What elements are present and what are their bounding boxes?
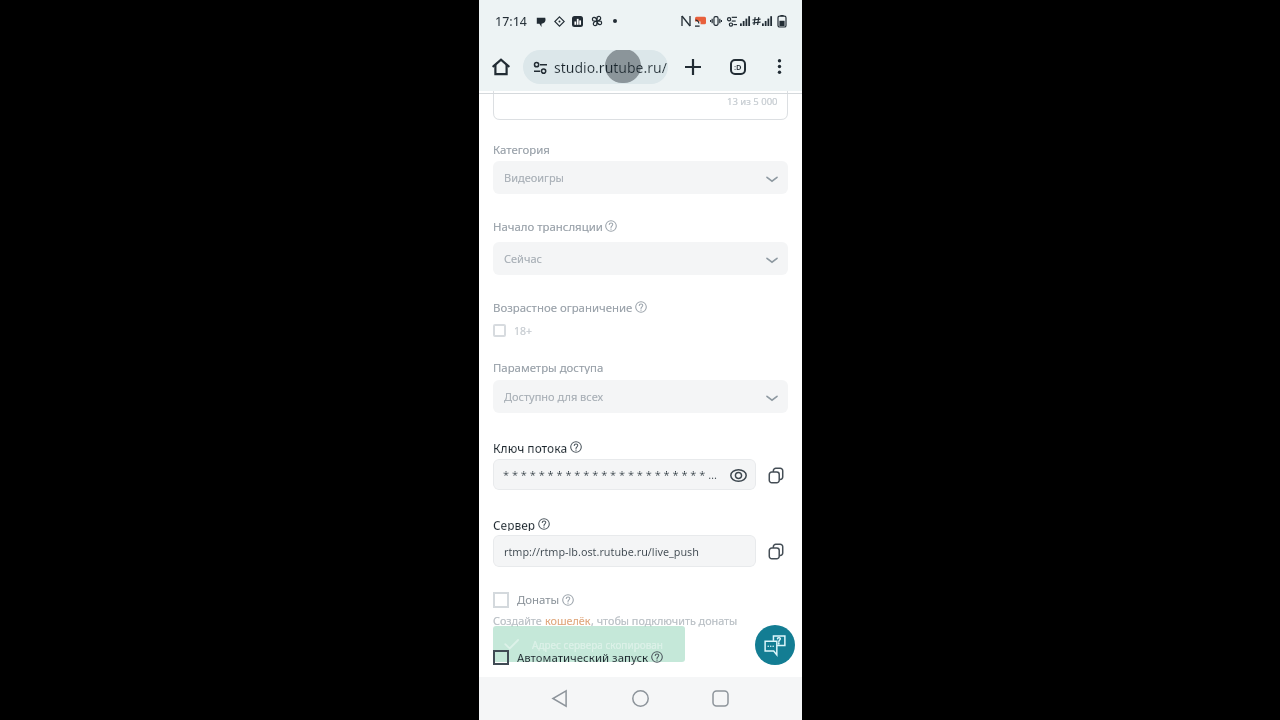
staticText: Ключ потока [493,440,568,454]
button[interactable]: rtmp://rtmp-lb.ost.rutube.ru/live_push [493,535,756,567]
staticText: rtmp://rtmp-lb.ost.rutube.ru/live_push [504,544,699,559]
staticText: , чтобы подключить донаты [591,613,738,628]
button[interactable]: Copy [763,538,788,564]
staticText: Начало трансляции [493,219,603,233]
staticText: Создайте [493,613,545,628]
staticText: Сервер [493,517,536,531]
button[interactable]: Switch tabs [722,51,753,82]
staticText: 18+ [514,324,533,338]
button[interactable]: New tab [677,51,708,82]
staticText: :D [734,62,742,72]
staticText: Доступно для всех [504,389,604,404]
staticText: Видеоигры [504,170,564,185]
button[interactable]: Copy [763,462,788,488]
button[interactable]: Сейчас [493,242,788,275]
staticText: кошелёк [545,613,591,628]
staticText: 13 из 5 000 [727,95,778,108]
button[interactable]: Home [618,677,663,720]
staticText: Сейчас [504,251,542,266]
staticText: * * * * * * * * * * * * * * * * * * * * … [503,467,726,482]
button[interactable]: Home [485,51,516,82]
button[interactable]: Support chat [755,625,795,665]
button[interactable]: Видеоигры [493,161,788,194]
staticText: 17:14 [495,13,528,30]
staticText: Адрес сервера скопирован [532,638,663,652]
button[interactable]: Show stream key [726,463,750,487]
button[interactable]: Back [537,677,582,720]
button[interactable]: 18+ [493,323,533,338]
staticText: Автоматический запуск [517,650,649,665]
staticText: Донаты [517,592,560,608]
staticText: Параметры доступа [493,360,604,374]
staticText: Возрастное ограничение [493,300,633,314]
button[interactable]: More options [764,51,795,82]
button[interactable]: Донаты [493,592,574,608]
staticText: studio.rutube.ru/c [554,58,668,77]
button[interactable]: * * * * * * * * * * * * * * * * * * * * … [493,459,756,490]
button[interactable]: Доступно для всех [493,380,788,413]
button[interactable]: studio.rutube.ru/c [523,50,668,84]
staticText: Категория [493,142,550,156]
button[interactable]: Автоматический запуск [493,649,663,665]
button[interactable]: Recent apps [698,677,743,720]
